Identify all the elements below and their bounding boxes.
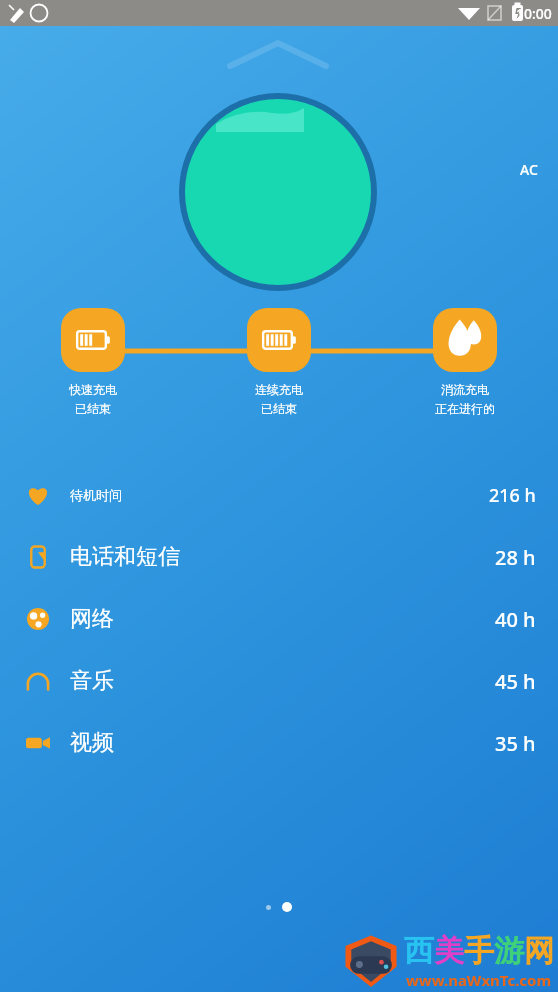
- staticText: 已结束: [75, 401, 111, 416]
- button[interactable]: 连续充电: [186, 308, 372, 416]
- button[interactable]: 消流充电: [372, 308, 558, 416]
- staticText: 网: [524, 932, 554, 970]
- staticText: 网络: [70, 605, 114, 633]
- button[interactable]: 视频: [0, 712, 558, 774]
- staticText: 已结束: [261, 401, 297, 416]
- staticText: 视频: [70, 729, 114, 757]
- other: 连续充电: [247, 308, 311, 372]
- button[interactable]: 音乐: [0, 650, 558, 712]
- staticText: 西: [404, 932, 434, 970]
- staticText: 音乐: [70, 667, 114, 695]
- button[interactable]: 电话和短信: [0, 526, 558, 588]
- staticText: 手: [464, 932, 494, 970]
- other: 消流充电: [433, 308, 497, 372]
- staticText: 45 h: [495, 668, 536, 695]
- button[interactable]: [282, 902, 292, 912]
- staticText: 35 h: [495, 730, 536, 757]
- staticText: 消流充电: [441, 382, 489, 397]
- staticText: 美: [434, 932, 464, 970]
- button[interactable]: 快速充电: [0, 308, 186, 416]
- button[interactable]: [266, 905, 271, 910]
- staticText: AC: [520, 160, 538, 179]
- staticText: www.naWxnTc.com: [406, 970, 552, 990]
- staticText: 游: [494, 932, 524, 970]
- other: 快速充电: [61, 308, 125, 372]
- button[interactable]: 网络: [0, 588, 558, 650]
- staticText: 正在进行的: [435, 401, 495, 416]
- staticText: 40 h: [495, 606, 536, 633]
- staticText: 电话和短信: [70, 543, 180, 571]
- staticText: 快速充电: [69, 382, 117, 397]
- staticText: 28 h: [495, 544, 536, 571]
- button[interactable]: 待机时间: [0, 464, 558, 526]
- staticText: 待机时间: [70, 487, 122, 503]
- staticText: 10:00: [516, 4, 552, 23]
- staticText: 连续充电: [255, 382, 303, 397]
- staticText: 216 h: [489, 483, 536, 508]
